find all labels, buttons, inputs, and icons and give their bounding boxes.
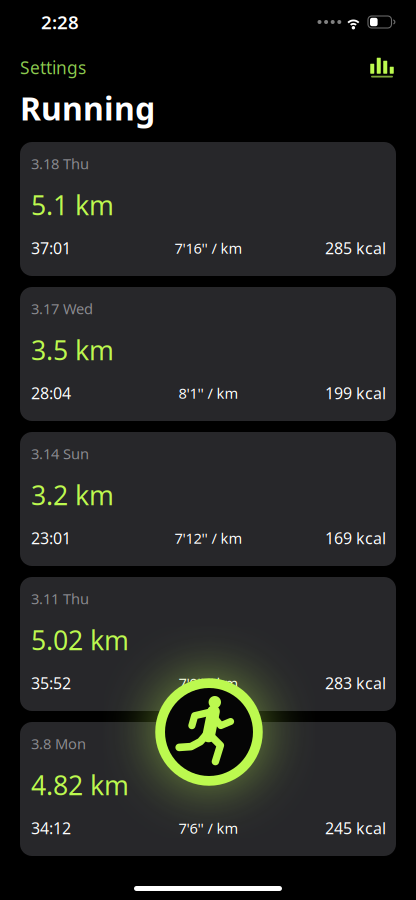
button[interactable]: 3.8 Mon [20, 722, 396, 856]
staticText: 28:04 [31, 382, 71, 404]
staticText: 3.14 Sun [31, 444, 89, 463]
staticText: 3.17 Wed [31, 299, 93, 318]
staticText: 5.1 km [31, 187, 114, 223]
staticText: 8'1'' / km [178, 383, 238, 403]
staticText: 37:01 [31, 237, 71, 259]
staticText: Running [20, 87, 155, 129]
staticText: 3.5 km [31, 332, 114, 368]
staticText: 169 kcal [325, 527, 386, 549]
staticText: 3.2 km [31, 477, 114, 513]
button[interactable]: 3.18 Thu [20, 142, 396, 276]
staticText: 5.02 km [31, 622, 129, 658]
staticText: 283 kcal [325, 672, 386, 694]
staticText: 4.82 km [31, 767, 129, 803]
staticText: 7'12'' / km [174, 528, 242, 548]
staticText: 3.18 Thu [31, 154, 89, 173]
staticText: 245 kcal [325, 817, 386, 839]
staticText: 7'9'' / km [178, 673, 238, 693]
staticText: 3.8 Mon [31, 734, 86, 753]
button[interactable]: 3.14 Sun [20, 432, 396, 566]
staticText: 7'16'' / km [174, 238, 242, 258]
staticText: 3.11 Thu [31, 589, 89, 608]
button[interactable]: 3.17 Wed [20, 287, 396, 421]
staticText: 7'6'' / km [178, 818, 238, 838]
button[interactable]: Settings [20, 48, 100, 87]
button[interactable]: 3.11 Thu [20, 577, 396, 711]
staticText: 2:28 [41, 10, 79, 34]
staticText: Settings [20, 56, 86, 79]
button[interactable]: Statistics [357, 52, 396, 82]
staticText: 23:01 [31, 527, 71, 549]
staticText: 35:52 [31, 672, 71, 694]
staticText: 285 kcal [325, 237, 386, 259]
staticText: 199 kcal [325, 382, 386, 404]
button[interactable]: Start run [124, 647, 294, 817]
staticText: 34:12 [31, 817, 71, 839]
